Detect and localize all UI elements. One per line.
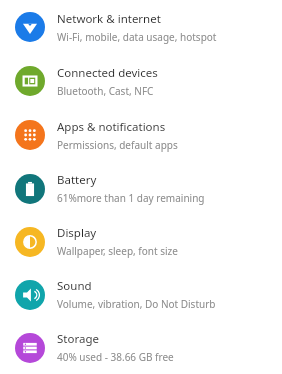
- staticText: Sound: [57, 278, 92, 294]
- other: Display: [15, 227, 45, 257]
- button[interactable]: Display: [0, 215, 282, 268]
- other: Sound: [15, 280, 45, 310]
- button[interactable]: Apps & notifications: [0, 108, 282, 162]
- staticText: Wallpaper, sleep, font size: [57, 244, 178, 258]
- staticText: 40% used - 38.66 GB free: [57, 350, 174, 364]
- staticText: Battery: [57, 172, 97, 188]
- other: Battery: [15, 174, 45, 204]
- other: Apps & notifications: [15, 120, 45, 150]
- staticText: 61%more than 1 day remaining: [57, 191, 205, 205]
- staticText: Display: [57, 225, 97, 241]
- staticText: Connected devices: [57, 65, 158, 81]
- button[interactable]: Connected devices: [0, 54, 282, 108]
- staticText: Apps & notifications: [57, 119, 166, 135]
- staticText: Wi-Fi, mobile, data usage, hotspot: [57, 30, 217, 44]
- other: Network & internet: [15, 12, 45, 42]
- button[interactable]: Sound: [0, 268, 282, 321]
- staticText: Storage: [57, 331, 99, 347]
- other: Storage: [15, 333, 45, 363]
- staticText: Permissions, default apps: [57, 138, 178, 152]
- staticText: Bluetooth, Cast, NFC: [57, 84, 154, 98]
- staticText: Volume, vibration, Do Not Disturb: [57, 297, 216, 311]
- button[interactable]: Battery: [0, 162, 282, 215]
- staticText: Network & internet: [57, 11, 161, 27]
- other: Connected devices: [15, 66, 45, 96]
- button[interactable]: Network & internet: [0, 0, 282, 54]
- button[interactable]: Storage: [0, 321, 282, 374]
